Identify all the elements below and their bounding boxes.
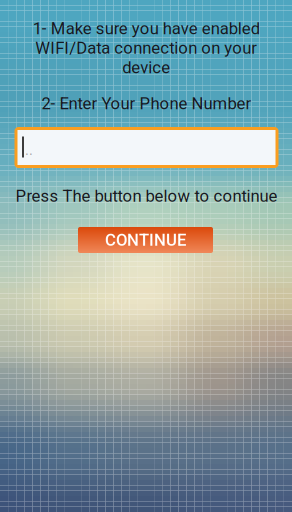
staticText: CONTINUE [105,230,186,250]
staticText: 2- Enter Your Phone Number [41,94,251,113]
staticText: Press The button below to continue [15,186,277,206]
staticText: 1- Make sure you have enabled WIFI/Data … [32,19,259,77]
button[interactable]: CONTINUE [78,227,213,253]
staticText: .. [25,141,33,159]
